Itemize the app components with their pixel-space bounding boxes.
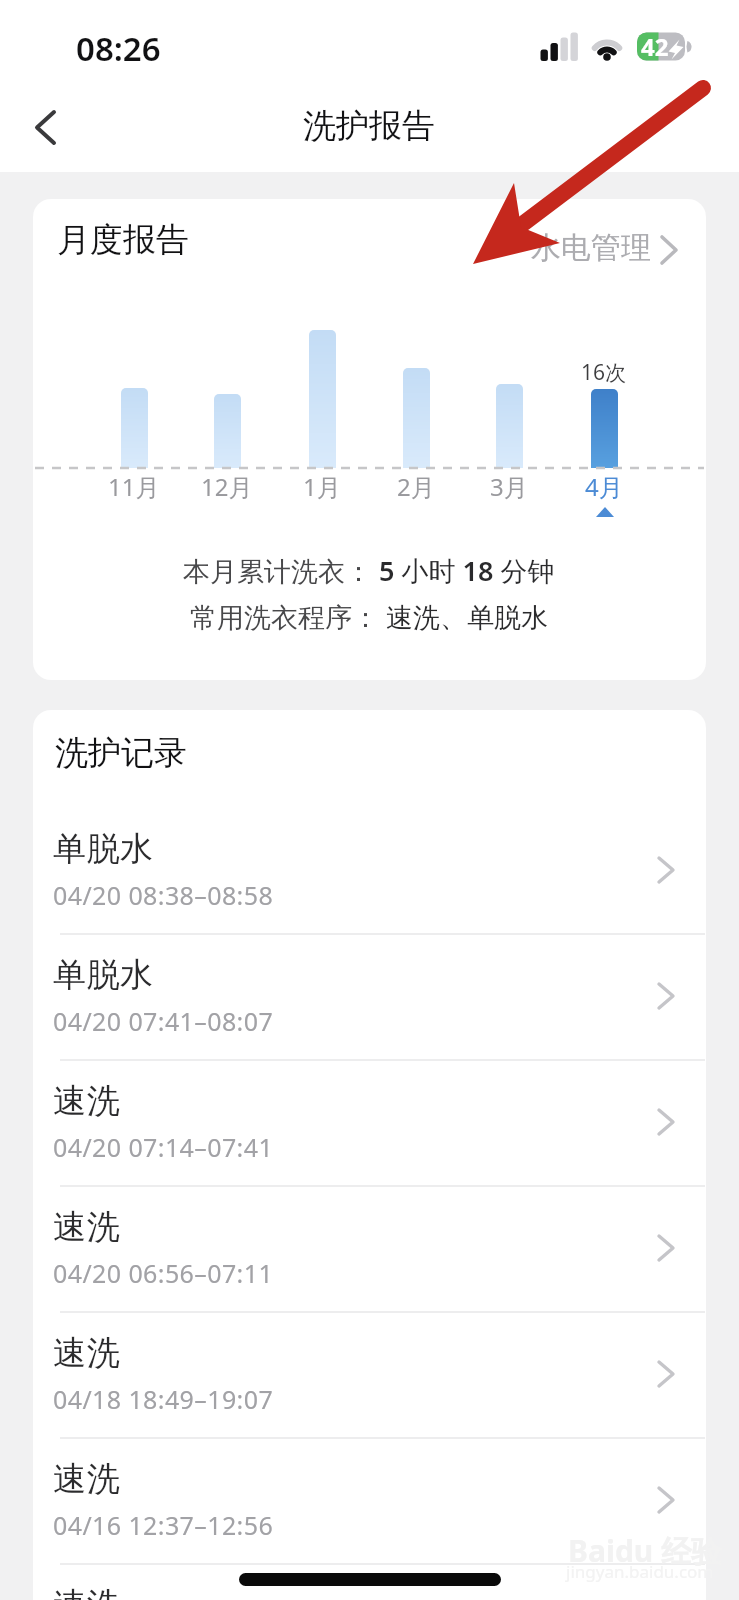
staticText: 月度报告: [57, 219, 189, 261]
button[interactable]: 单脱水: [33, 818, 706, 934]
staticText: 11月: [108, 470, 160, 503]
button[interactable]: 速洗: [33, 1070, 706, 1186]
staticText: 3月: [490, 470, 528, 503]
staticText: 速洗: [53, 1332, 120, 1374]
button[interactable]: 速洗: [33, 1196, 706, 1312]
staticText: 04/16 12:37–12:56: [53, 1508, 274, 1542]
staticText: 04/20 07:41–08:07: [53, 1004, 274, 1038]
staticText: 速洗: [53, 1206, 120, 1248]
button[interactable]: 单脱水: [33, 944, 706, 1060]
button[interactable]: 速洗: [33, 1574, 706, 1600]
staticText: 单脱水: [53, 828, 154, 870]
staticText: jingyan.baidu.com: [566, 1560, 714, 1583]
staticText: 2月: [397, 470, 435, 503]
staticText: 4月: [585, 470, 623, 503]
staticText: 速洗: [53, 1458, 120, 1500]
staticText: 12月: [201, 470, 253, 503]
staticText: 08:26: [76, 26, 161, 71]
staticText: 水电管理: [531, 229, 651, 267]
staticText: 速洗: [53, 1584, 120, 1600]
staticText: 16次: [581, 358, 627, 387]
staticText: 常用洗衣程序： 速洗、单脱水: [190, 598, 549, 635]
staticText: 单脱水: [53, 954, 154, 996]
staticText: Baidu 经验: [568, 1530, 722, 1571]
staticText: 04/20 08:38–08:58: [53, 878, 274, 912]
button[interactable]: [20, 103, 70, 153]
staticText: 42: [641, 30, 669, 63]
staticText: 洗护记录: [55, 732, 187, 774]
staticText: 洗护报告: [303, 105, 435, 147]
button[interactable]: 速洗: [33, 1448, 706, 1564]
button[interactable]: 速洗: [33, 1322, 706, 1438]
staticText: 04/18 18:49–19:07: [53, 1382, 274, 1416]
staticText: 1月: [303, 470, 341, 503]
staticText: 04/20 07:14–07:41: [53, 1130, 274, 1164]
staticText: 04/20 06:56–07:11: [53, 1256, 274, 1290]
staticText: 速洗: [53, 1080, 120, 1122]
button[interactable]: [520, 225, 690, 275]
staticText: 本月累计洗衣： 5 小时 18 分钟: [183, 552, 555, 589]
